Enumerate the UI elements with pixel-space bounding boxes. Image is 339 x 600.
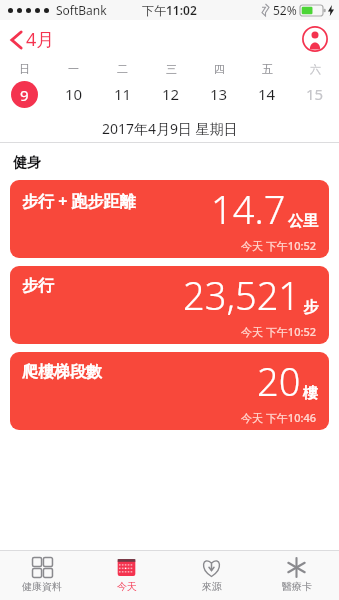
staticText: 52% bbox=[273, 2, 297, 18]
staticText: 4月 bbox=[26, 27, 55, 52]
button[interactable]: 步行 bbox=[10, 266, 329, 344]
staticText: 六 bbox=[310, 62, 321, 76]
staticText: 20 bbox=[257, 355, 301, 407]
staticText: 二 bbox=[117, 62, 128, 76]
button[interactable]: 11 bbox=[98, 79, 147, 109]
staticText: 三 bbox=[166, 62, 177, 76]
button[interactable]: 爬樓梯段數 bbox=[10, 352, 329, 430]
staticText: 14.7 bbox=[211, 183, 286, 235]
staticText: 14 bbox=[258, 84, 276, 104]
staticText: 今天 下午10:52 bbox=[241, 324, 317, 339]
staticText: 23,521 bbox=[183, 269, 301, 321]
staticText: 今天 下午10:52 bbox=[241, 238, 317, 253]
staticText: 11 bbox=[114, 84, 132, 104]
staticText: 2017年4月9日 星期日 bbox=[102, 119, 238, 138]
button[interactable]: 14 bbox=[243, 79, 291, 109]
staticText: 步行 + 跑步距離 bbox=[22, 190, 136, 212]
staticText: 13 bbox=[210, 84, 228, 104]
button[interactable]: 4月 bbox=[8, 22, 58, 57]
staticText: 樓 bbox=[303, 384, 318, 403]
button[interactable]: 今天 bbox=[84, 551, 169, 600]
button[interactable]: Profile bbox=[302, 26, 328, 52]
staticText: 下午11:02 bbox=[142, 2, 197, 18]
staticText: 來源 bbox=[202, 580, 222, 593]
button[interactable]: 步行 + 跑步距離 bbox=[10, 180, 329, 258]
staticText: 四 bbox=[214, 62, 225, 76]
staticText: 公里 bbox=[288, 212, 318, 231]
button[interactable]: 10 bbox=[49, 79, 98, 109]
button[interactable]: 來源 bbox=[169, 551, 254, 600]
staticText: 9 bbox=[20, 85, 29, 105]
staticText: 醫療卡 bbox=[282, 580, 312, 593]
staticText: 日 bbox=[19, 62, 30, 76]
button[interactable]: 15 bbox=[291, 79, 339, 109]
staticText: 10 bbox=[65, 84, 83, 104]
staticText: 五 bbox=[262, 62, 273, 76]
staticText: 12 bbox=[162, 84, 180, 104]
staticText: 一 bbox=[68, 62, 79, 76]
staticText: 步行 bbox=[22, 276, 54, 296]
button[interactable]: 13 bbox=[195, 79, 243, 109]
staticText: SoftBank bbox=[56, 2, 107, 18]
button[interactable]: 12 bbox=[147, 79, 195, 109]
staticText: 今天 bbox=[117, 580, 137, 593]
staticText: 步 bbox=[303, 298, 318, 317]
staticText: 15 bbox=[306, 84, 324, 104]
button[interactable]: 9 bbox=[0, 79, 49, 109]
staticText: 爬樓梯段數 bbox=[22, 362, 102, 382]
button[interactable]: 醫療卡 bbox=[254, 551, 339, 600]
button[interactable]: 健康資料 bbox=[0, 551, 84, 600]
staticText: 今天 下午10:46 bbox=[241, 410, 317, 425]
staticText: 健康資料 bbox=[22, 580, 62, 593]
staticText: 健身 bbox=[13, 154, 41, 172]
